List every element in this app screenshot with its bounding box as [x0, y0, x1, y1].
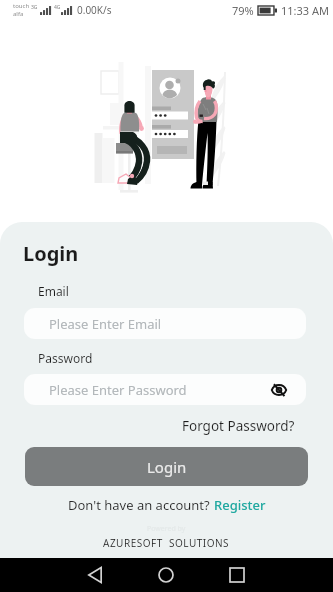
button[interactable]: Home [148, 558, 184, 592]
button[interactable]: Recent apps [219, 558, 255, 592]
staticText: 11:33 AM [281, 3, 329, 18]
staticText: Powered by [147, 524, 186, 534]
staticText: 4G [54, 4, 61, 11]
staticText: Please Enter Email [49, 315, 162, 333]
staticText: Login [23, 240, 79, 267]
staticText: touch [13, 2, 30, 10]
button[interactable]: Back [77, 558, 113, 592]
staticText: 3G [31, 4, 38, 11]
staticText: Don't have an account? [68, 496, 214, 514]
staticText: 0.00K/s [77, 3, 112, 17]
staticText: 79% [232, 3, 254, 18]
staticText: AZURESOFT SOLUTIONS [103, 536, 230, 550]
staticText: Please Enter Password [49, 381, 187, 399]
button[interactable]: Show password [268, 379, 290, 401]
button[interactable]: Login [25, 447, 308, 486]
button[interactable]: Please Enter Password [24, 374, 306, 405]
button[interactable]: Forgot Password? [182, 417, 295, 435]
button[interactable]: Please Enter Email [24, 308, 306, 339]
staticText: Login [147, 457, 187, 477]
staticText: alfa [13, 10, 24, 18]
button[interactable]: Register [214, 496, 266, 514]
staticText: Email [38, 283, 69, 299]
staticText: Password [38, 350, 93, 366]
